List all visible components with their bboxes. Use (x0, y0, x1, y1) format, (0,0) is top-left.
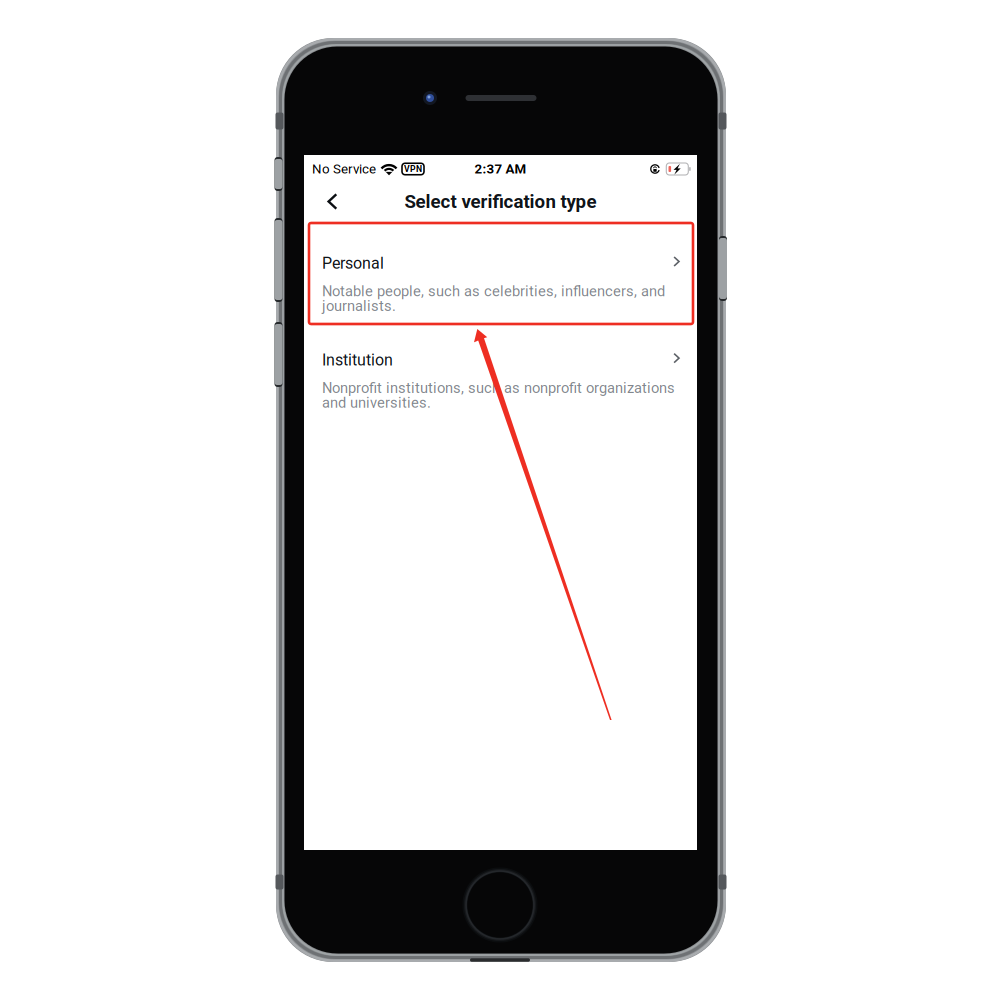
staticText: Select verification type (404, 191, 596, 212)
button[interactable]: Back (304, 184, 352, 219)
button[interactable]: Institution (304, 317, 697, 413)
button[interactable]: Personal (304, 220, 697, 317)
staticText: Personal (322, 254, 384, 273)
staticText: No Service (312, 161, 376, 177)
staticText: VPN (404, 164, 422, 174)
staticText: Notable people, such as celebrities, inf… (322, 283, 665, 315)
staticText: Institution (322, 351, 393, 369)
staticText: Nonprofit institutions, such as nonprofi… (322, 379, 675, 411)
staticText: 2:37 AM (474, 161, 526, 177)
